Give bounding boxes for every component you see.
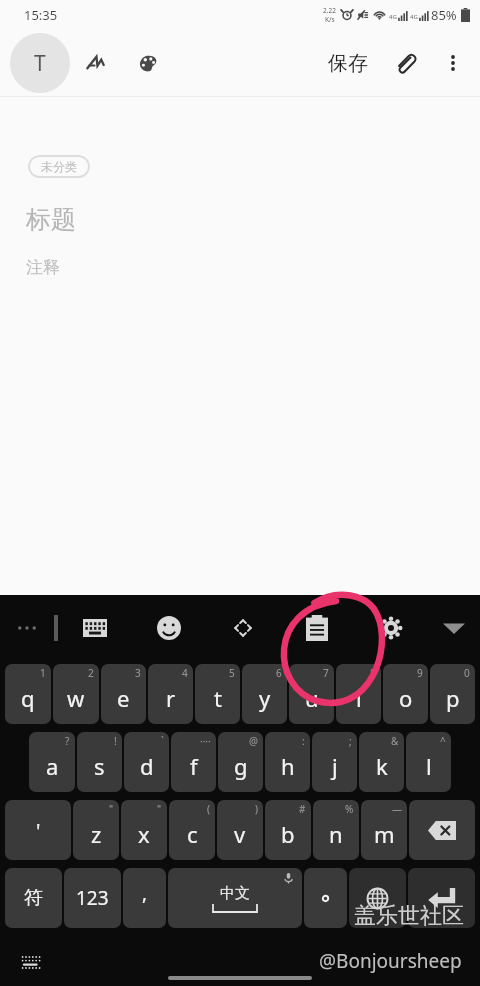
staticText: ;	[349, 734, 352, 748]
button[interactable]: 符	[5, 868, 62, 928]
button[interactable]: ····	[171, 732, 216, 792]
button[interactable]: More options	[430, 40, 476, 86]
button[interactable]: "	[121, 800, 167, 860]
staticText: @Bonjoursheep	[319, 948, 462, 974]
button[interactable]: ^	[406, 732, 451, 792]
staticText: 符	[24, 886, 43, 910]
button[interactable]: 5	[195, 664, 240, 724]
staticText: r	[166, 683, 176, 713]
button[interactable]: 3	[101, 664, 146, 724]
button[interactable]: Emoji	[132, 595, 206, 661]
staticText: 保存	[328, 51, 368, 76]
staticText: 1	[40, 666, 46, 680]
staticText: %	[345, 802, 354, 816]
button[interactable]: %	[313, 800, 359, 860]
staticText: 4G	[410, 13, 418, 21]
staticText: d	[140, 751, 154, 781]
staticText: c	[187, 819, 198, 849]
staticText: ····	[200, 734, 211, 748]
staticText: "	[157, 802, 162, 816]
button[interactable]: Switch language	[349, 868, 406, 928]
staticText: a	[46, 751, 59, 781]
staticText: v	[234, 819, 246, 849]
staticText: 2	[88, 666, 94, 680]
button[interactable]: 0	[430, 664, 475, 724]
staticText: 未分类	[41, 159, 77, 174]
staticText: 85%	[431, 6, 457, 24]
button[interactable]: Attach	[380, 38, 430, 88]
staticText: (	[207, 802, 210, 816]
staticText: :	[302, 734, 305, 748]
button[interactable]: —	[361, 800, 407, 860]
button[interactable]: Keyboard layout	[58, 595, 132, 661]
staticText: t	[214, 683, 222, 713]
staticText: 123	[76, 885, 109, 911]
staticText: "	[109, 802, 114, 816]
staticText: !	[114, 734, 117, 748]
button[interactable]: 7	[289, 664, 334, 724]
staticText: w	[67, 683, 85, 713]
button[interactable]: '	[5, 800, 71, 860]
button[interactable]: Clipboard	[280, 595, 354, 661]
button[interactable]: 2	[53, 664, 99, 724]
button[interactable]: More	[0, 595, 54, 661]
button[interactable]: Handwriting	[70, 37, 122, 89]
button[interactable]: ;	[312, 732, 357, 792]
staticText: h	[281, 751, 295, 781]
staticText: 9	[417, 666, 423, 680]
staticText: 中文	[220, 884, 250, 903]
staticText: 注释	[26, 257, 60, 278]
staticText: ^	[440, 734, 446, 748]
button[interactable]: Backspace	[409, 800, 475, 860]
button[interactable]: Space	[168, 868, 302, 928]
button[interactable]: "	[73, 800, 119, 860]
staticText: g	[234, 751, 248, 781]
button[interactable]: 123	[64, 868, 121, 928]
staticText: 4	[182, 666, 188, 680]
staticText: m	[374, 819, 395, 849]
button[interactable]: Hide keyboard	[428, 595, 480, 661]
button[interactable]: :	[265, 732, 310, 792]
button[interactable]: !	[77, 732, 122, 792]
staticText: e	[117, 683, 130, 713]
staticText: j	[332, 751, 338, 781]
staticText: 标题	[26, 204, 76, 235]
button[interactable]: 未分类	[28, 155, 90, 178]
staticText: 0	[464, 666, 470, 680]
button[interactable]: 6	[242, 664, 287, 724]
button[interactable]: Enter	[408, 868, 475, 928]
button[interactable]: ,	[123, 868, 166, 928]
staticText: z	[91, 819, 102, 849]
button[interactable]: )	[217, 800, 263, 860]
staticText: p	[446, 683, 460, 713]
staticText: u	[305, 683, 319, 713]
button[interactable]: 8	[336, 664, 381, 724]
button[interactable]: Palette	[122, 37, 174, 89]
staticText: &	[391, 734, 399, 748]
button[interactable]: @	[218, 732, 263, 792]
button[interactable]: (	[169, 800, 215, 860]
button[interactable]: 保存	[316, 43, 380, 84]
button[interactable]: `	[124, 732, 169, 792]
button[interactable]: Settings	[354, 595, 428, 661]
staticText: q	[21, 683, 35, 713]
button[interactable]	[304, 868, 347, 928]
staticText: y	[259, 683, 271, 713]
staticText: #	[299, 802, 306, 816]
staticText: `	[161, 734, 164, 748]
staticText: T	[34, 49, 46, 78]
staticText: 5	[229, 666, 235, 680]
button[interactable]: Move cursor	[206, 595, 280, 661]
button[interactable]: 9	[383, 664, 428, 724]
button[interactable]: &	[359, 732, 404, 792]
button[interactable]: Hide keyboard	[14, 944, 48, 978]
staticText: 7	[323, 666, 329, 680]
staticText: n	[329, 819, 343, 849]
staticText: —	[392, 802, 402, 816]
button[interactable]: Text mode	[10, 33, 70, 93]
button[interactable]: 4	[148, 664, 193, 724]
staticText: s	[94, 751, 105, 781]
button[interactable]: #	[265, 800, 311, 860]
button[interactable]: ?	[29, 732, 75, 792]
button[interactable]: 1	[5, 664, 51, 724]
